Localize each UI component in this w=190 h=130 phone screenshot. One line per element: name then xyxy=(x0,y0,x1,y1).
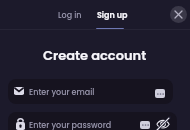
staticText: Enter your password xyxy=(29,120,112,130)
staticText: Log in xyxy=(58,10,82,21)
staticText: Sign up xyxy=(97,10,128,21)
staticText: Create account xyxy=(43,46,147,64)
button[interactable]: Enter your email xyxy=(8,79,173,104)
button[interactable]: Close xyxy=(170,6,187,23)
button[interactable]: Show password xyxy=(155,116,171,130)
staticText: Enter your email xyxy=(29,87,95,98)
button[interactable]: Autofill password xyxy=(140,121,150,129)
button[interactable]: Enter your password xyxy=(8,112,177,130)
button[interactable]: Log in xyxy=(52,5,88,26)
button[interactable]: Sign up xyxy=(91,5,134,26)
button[interactable]: Autofill xyxy=(155,89,165,98)
